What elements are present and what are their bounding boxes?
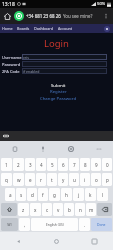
button[interactable]: j xyxy=(73,188,84,201)
button[interactable]: r xyxy=(36,173,46,186)
button[interactable]: Profile xyxy=(103,25,111,33)
button[interactable]: Change Password xyxy=(0,95,113,101)
button[interactable]: Submit xyxy=(0,82,113,88)
button[interactable]: 9 xyxy=(91,158,101,171)
button[interactable]: 6 xyxy=(58,158,68,171)
staticText: Password xyxy=(2,62,21,67)
button[interactable]: e xyxy=(25,173,35,186)
staticText: m xyxy=(89,207,94,213)
button[interactable]: u xyxy=(69,173,79,186)
staticText: h xyxy=(65,192,68,198)
button[interactable]: f xyxy=(38,188,48,201)
button[interactable]: 4 xyxy=(36,158,46,171)
staticText: n xyxy=(79,207,82,213)
staticText: i xyxy=(84,177,86,183)
staticText: Username xyxy=(2,55,22,60)
staticText: Done xyxy=(97,222,106,227)
staticText: 4 xyxy=(40,162,43,168)
button[interactable]: 0 xyxy=(102,158,112,171)
button[interactable]: Boards xyxy=(15,24,32,33)
button[interactable]: . xyxy=(79,218,90,231)
staticText: 0 xyxy=(106,162,109,168)
button[interactable]: Home xyxy=(0,24,15,33)
button[interactable]: m xyxy=(86,203,96,216)
button[interactable]: 7 xyxy=(69,158,79,171)
staticText: 5 xyxy=(51,162,54,168)
staticText: r xyxy=(40,177,42,183)
staticText: Dashboard xyxy=(34,26,54,31)
staticText: f xyxy=(42,192,44,198)
button[interactable]: o xyxy=(91,173,101,186)
button[interactable]: More xyxy=(85,141,113,157)
staticText: u xyxy=(73,177,76,183)
staticText: j xyxy=(78,192,80,198)
button[interactable]: h xyxy=(61,188,72,201)
staticText: Change Password xyxy=(40,95,77,101)
button[interactable]: !#1 xyxy=(1,218,18,231)
button[interactable]: s xyxy=(16,188,26,201)
staticText: v xyxy=(57,207,60,213)
button[interactable]: Dashboard xyxy=(32,24,56,33)
staticText: Account xyxy=(58,26,73,31)
button[interactable]: c xyxy=(42,203,52,216)
staticText: vris xyxy=(23,55,29,60)
staticText: s xyxy=(20,192,23,198)
button[interactable]: x xyxy=(30,203,41,216)
staticText: Submit xyxy=(51,82,66,88)
button[interactable]: Back xyxy=(0,232,37,250)
button[interactable]: p xyxy=(102,173,112,186)
button[interactable]: q xyxy=(1,173,12,186)
button[interactable]: Home xyxy=(37,232,75,250)
button[interactable]: Emoji xyxy=(2,132,10,140)
button[interactable]: v xyxy=(53,203,63,216)
staticText: 6 xyxy=(62,162,65,168)
staticText: 50% xyxy=(97,1,106,7)
staticText: Boards xyxy=(17,26,30,31)
button[interactable]: Home xyxy=(2,11,13,22)
button[interactable]: English (US) xyxy=(31,218,78,231)
button[interactable]: a xyxy=(5,188,15,201)
button[interactable]: Voice input xyxy=(29,141,57,157)
button[interactable]: 3 xyxy=(25,158,35,171)
staticText: You see mine? xyxy=(63,13,93,19)
button[interactable]: 8 xyxy=(80,158,90,171)
staticText: a xyxy=(9,192,12,198)
staticText: 3 xyxy=(29,162,32,168)
staticText: x xyxy=(34,207,37,213)
button[interactable]: w xyxy=(13,173,24,186)
button[interactable]: Settings xyxy=(57,141,85,157)
staticText: 9 xyxy=(95,162,98,168)
button[interactable]: l xyxy=(97,188,108,201)
button[interactable]: Shift xyxy=(1,203,17,216)
button[interactable]: , xyxy=(19,218,30,231)
button[interactable]: d xyxy=(27,188,37,201)
staticText: 2FA Code xyxy=(2,69,20,74)
button[interactable]: Register xyxy=(0,88,113,94)
button[interactable]: Done xyxy=(91,218,112,231)
button[interactable]: b xyxy=(64,203,74,216)
staticText: 7 xyxy=(73,162,76,168)
button[interactable]: 5 xyxy=(47,158,57,171)
button[interactable]: vris xyxy=(22,54,107,60)
button[interactable]: More options xyxy=(101,11,111,21)
button[interactable]: Backspace xyxy=(97,203,112,216)
button[interactable]: Account xyxy=(56,24,75,33)
staticText: c xyxy=(46,207,49,213)
button[interactable]: if enabled xyxy=(22,68,107,74)
button[interactable]: i xyxy=(80,173,90,186)
staticText: if enabled xyxy=(23,69,40,74)
button[interactable]: z xyxy=(18,203,29,216)
staticText: . xyxy=(84,222,86,228)
button[interactable]: 1 xyxy=(1,158,12,171)
button[interactable]: t xyxy=(47,173,57,186)
button[interactable] xyxy=(22,61,107,67)
staticText: Home xyxy=(2,26,13,31)
staticText: b xyxy=(68,207,71,213)
button[interactable]: k xyxy=(85,188,96,201)
button[interactable]: Clipboard xyxy=(0,141,29,157)
button[interactable]: y xyxy=(58,173,68,186)
button[interactable]: 2 xyxy=(13,158,24,171)
button[interactable]: Recent apps xyxy=(75,232,113,250)
button[interactable]: g xyxy=(49,188,60,201)
button[interactable]: n xyxy=(75,203,85,216)
